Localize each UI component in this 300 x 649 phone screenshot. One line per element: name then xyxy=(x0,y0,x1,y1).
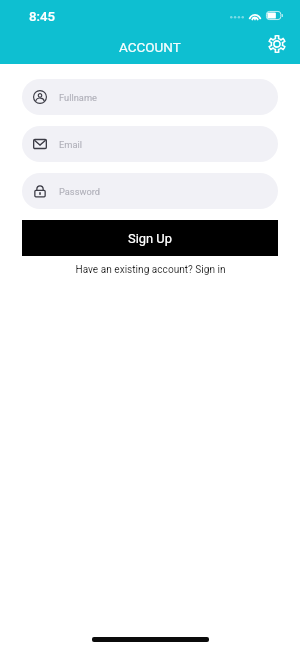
staticText: Email xyxy=(59,139,83,150)
button[interactable]: Password xyxy=(22,173,278,209)
staticText: 8:45 xyxy=(29,9,55,24)
staticText: ACCOUNT xyxy=(119,39,181,55)
button[interactable]: Sign Up xyxy=(22,220,278,256)
staticText: Sign Up xyxy=(128,231,172,246)
button[interactable]: Fullname xyxy=(22,79,278,115)
staticText: Password xyxy=(59,186,101,197)
staticText: Fullname xyxy=(59,92,97,103)
button[interactable]: Settings xyxy=(262,30,292,57)
button[interactable]: Have an existing account? Sign in xyxy=(75,264,226,276)
button[interactable]: Email xyxy=(22,126,278,162)
